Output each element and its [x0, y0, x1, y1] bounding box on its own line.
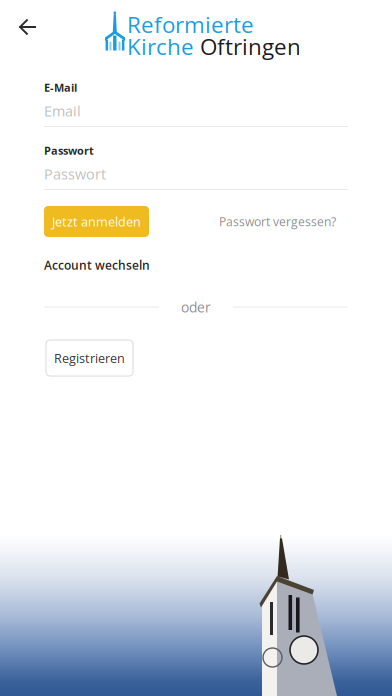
- staticText: Oftringen: [200, 31, 301, 61]
- staticText: Kirche: [127, 31, 200, 61]
- staticText: Account wechseln: [44, 257, 150, 273]
- button[interactable]: Jetzt anmelden: [44, 206, 149, 237]
- button[interactable]: Passwort vergessen?: [219, 213, 336, 230]
- staticText: Passwort: [44, 164, 106, 184]
- staticText: Passwort: [44, 143, 94, 158]
- staticText: Email: [44, 101, 81, 121]
- staticText: Reformierte: [127, 9, 254, 39]
- button[interactable]: Back: [0, 0, 52, 54]
- button[interactable]: Registrieren: [46, 340, 133, 376]
- staticText: Jetzt anmelden: [52, 213, 141, 230]
- staticText: Passwort vergessen?: [219, 213, 336, 230]
- staticText: oder: [181, 298, 211, 316]
- button[interactable]: Account wechseln: [44, 257, 150, 272]
- staticText: Registrieren: [54, 349, 125, 367]
- staticText: E-Mail: [44, 80, 77, 95]
